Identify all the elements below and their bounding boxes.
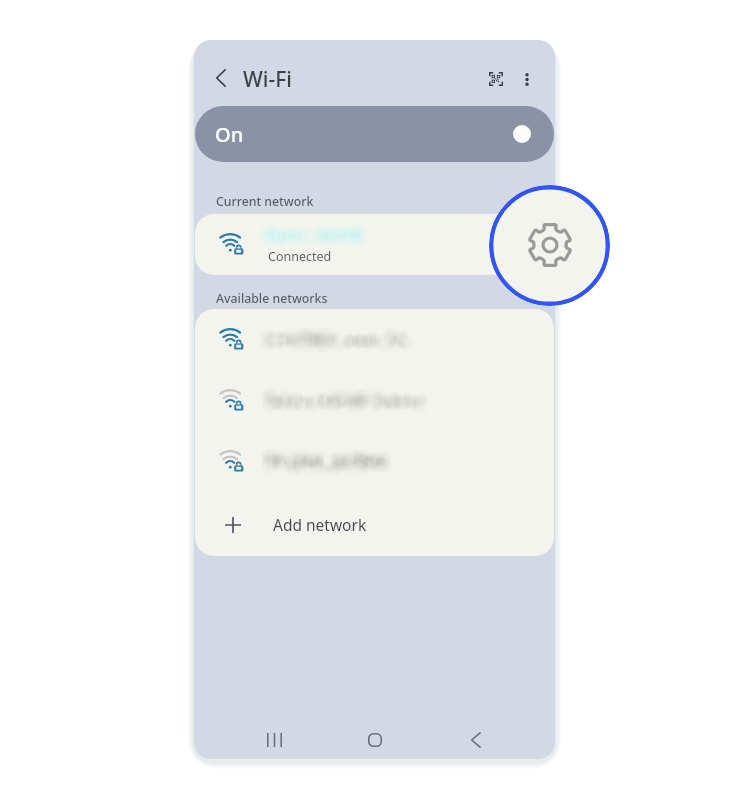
staticText: Connected	[268, 248, 332, 265]
button[interactable]	[195, 309, 554, 370]
button[interactable]: Navigate up	[205, 63, 235, 93]
staticText: Current network	[216, 193, 314, 210]
staticText: Wi-Fi	[243, 65, 292, 94]
button[interactable]	[195, 431, 554, 492]
staticText: On	[215, 121, 244, 148]
button[interactable]: Recent apps	[259, 725, 289, 755]
button[interactable]: Connected	[195, 214, 554, 275]
button[interactable]: Scan QR code	[481, 64, 511, 94]
button[interactable]: Settings	[489, 185, 610, 306]
button[interactable]: Add network	[195, 492, 554, 556]
button[interactable]: On	[195, 106, 554, 162]
staticText: Available networks	[216, 290, 328, 307]
button[interactable]: Home	[360, 725, 390, 755]
button[interactable]: Back	[460, 725, 490, 755]
button[interactable]: More options	[512, 64, 542, 94]
staticText: Add network	[273, 514, 367, 535]
button[interactable]	[195, 370, 554, 431]
